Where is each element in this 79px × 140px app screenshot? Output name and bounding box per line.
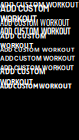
staticText: ADD CUSTOM WORKOUT [0, 31, 46, 50]
staticText: ADD CUSTOM WORKOUT [0, 17, 69, 28]
staticText: ADD CUSTOM WORKOUT [0, 81, 72, 90]
staticText: ADD CUSTOM WORKOUT [0, 25, 71, 38]
staticText: ADD CUSTOM WORKOUT [0, 66, 46, 87]
staticText: ADD CUSTOM WORKOUT [0, 3, 49, 24]
staticText: ADD CUSTOM WORKOUT [0, 45, 74, 54]
staticText: ADD CUSTOM WORKOUT [0, 55, 75, 62]
staticText: ADD CUSTOM WORKOUT [0, 63, 74, 72]
staticText: ADD CUSTOM WORKOUT [0, 0, 79, 10]
